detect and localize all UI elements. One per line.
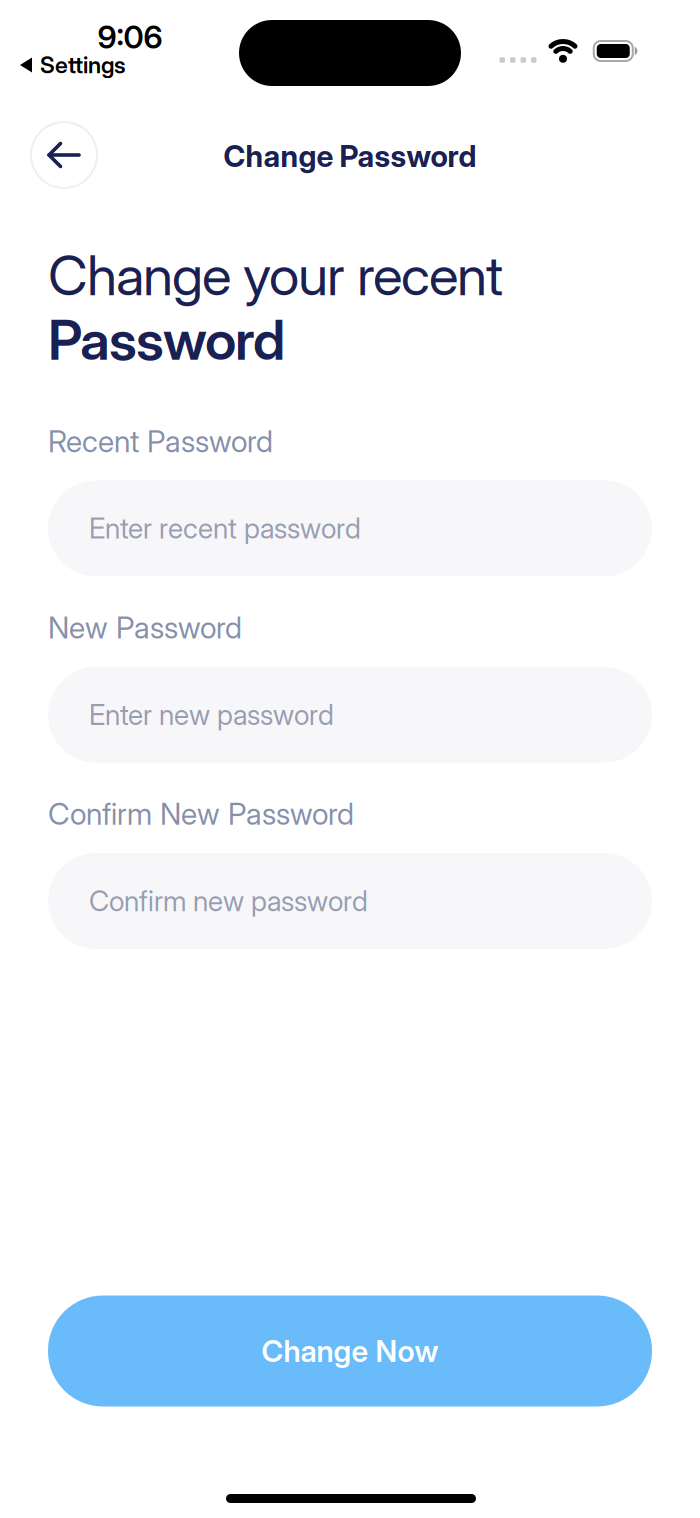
button[interactable]: Back to Settings [20, 51, 126, 79]
staticText: 9:06 [97, 18, 162, 56]
staticText: Change Now [261, 1333, 438, 1369]
button[interactable]: Back [30, 121, 98, 189]
staticText: Enter new password [89, 698, 334, 732]
staticText: Change your recent [48, 243, 503, 308]
button[interactable]: Enter new password [48, 667, 652, 763]
staticText: Confirm New Password [48, 796, 354, 832]
button[interactable]: Confirm new password [48, 853, 652, 949]
staticText: Confirm new password [89, 884, 368, 918]
button[interactable]: Enter recent password [48, 480, 652, 576]
staticText: Password [48, 308, 285, 372]
staticText: New Password [48, 609, 242, 646]
staticText: Recent Password [48, 423, 273, 459]
staticText: Enter recent password [89, 511, 361, 545]
staticText: Change Password [223, 138, 476, 174]
staticText: Settings [40, 51, 126, 79]
button[interactable]: Change Now [48, 1295, 652, 1406]
